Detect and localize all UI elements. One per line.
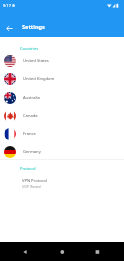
button[interactable]: Canada	[0, 107, 124, 125]
button[interactable]: United Kingdom	[0, 70, 124, 88]
staticText: Canada	[23, 113, 38, 119]
staticText: France	[23, 131, 36, 137]
button[interactable]: Back	[5, 24, 13, 33]
staticText: Protocol	[20, 166, 36, 171]
button[interactable]: VPN Protocol	[0, 174, 124, 192]
staticText: United States	[23, 58, 49, 64]
button[interactable]: France	[0, 125, 124, 143]
staticText: Germany	[23, 149, 41, 155]
button[interactable]: Australia	[0, 89, 124, 107]
staticText: VPN Protocol	[22, 178, 48, 184]
staticText: Countries	[20, 46, 39, 51]
button[interactable]: United States	[0, 52, 124, 70]
staticText: Settings	[22, 23, 45, 31]
staticText: Australia	[23, 95, 40, 101]
staticText: UDP (Faster)	[22, 184, 42, 188]
button[interactable]: Germany	[0, 143, 124, 161]
staticText: United Kingdom	[23, 76, 55, 82]
staticText: 9:17	[3, 3, 11, 8]
